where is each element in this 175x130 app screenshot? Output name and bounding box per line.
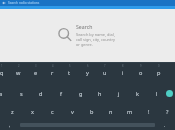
staticText: r <box>51 69 54 77</box>
button[interactable]: 2 <box>10 63 27 84</box>
staticText: q <box>0 69 4 77</box>
staticText: n <box>109 108 113 116</box>
staticText: o <box>139 69 143 77</box>
staticText: 9 <box>140 64 142 68</box>
other: Search <box>57 27 73 43</box>
button[interactable]: 8 <box>114 63 132 84</box>
button[interactable]: 4 <box>44 63 61 84</box>
button[interactable]: 6 <box>78 63 96 84</box>
staticText: 4 <box>52 64 54 68</box>
staticText: , <box>9 122 11 128</box>
staticText: call sign, city, country <box>76 37 115 42</box>
button[interactable]: j <box>109 84 128 103</box>
button[interactable]: d <box>31 84 51 103</box>
staticText: 7 <box>104 64 106 68</box>
staticText: 1 <box>1 64 3 68</box>
button[interactable]: k <box>128 84 147 103</box>
button[interactable]: Enter <box>166 90 173 97</box>
button[interactable]: Back <box>0 0 175 6</box>
button[interactable]: x <box>22 103 42 120</box>
button[interactable]: , <box>0 120 20 130</box>
staticText: 5 <box>69 64 71 68</box>
staticText: Search by name, dial, <box>76 32 115 37</box>
staticText: 3 <box>35 64 37 68</box>
staticText: c <box>51 108 54 116</box>
staticText: 0 <box>158 64 160 68</box>
staticText: h <box>98 90 102 98</box>
button[interactable]: Back <box>2 1 6 5</box>
staticText: k <box>136 90 139 98</box>
button[interactable]: 9 <box>132 63 150 84</box>
button[interactable]: a <box>0 84 11 103</box>
button[interactable]: 0 <box>150 63 168 84</box>
button[interactable]: h <box>90 84 109 103</box>
button[interactable]: l <box>147 84 166 103</box>
button[interactable]: f <box>51 84 71 103</box>
staticText: 2 <box>18 64 20 68</box>
button[interactable]: . <box>155 120 175 130</box>
staticText: f <box>60 90 62 98</box>
staticText: x <box>31 108 34 116</box>
button[interactable]: 5 <box>61 63 78 84</box>
staticText: j <box>118 90 120 98</box>
button[interactable]: 3 <box>27 63 44 84</box>
button[interactable]: n <box>101 103 120 120</box>
staticText: a <box>0 90 3 98</box>
button[interactable]: v <box>62 103 82 120</box>
button[interactable]: c <box>42 103 62 120</box>
button[interactable]: z <box>2 103 22 120</box>
staticText: v <box>71 108 74 116</box>
staticText: d <box>39 90 43 98</box>
button[interactable]: m <box>120 103 139 120</box>
button[interactable]: 7 <box>96 63 114 84</box>
staticText: u <box>103 69 107 77</box>
staticText: w <box>16 69 21 77</box>
staticText: Search radio stations <box>8 1 40 5</box>
staticText: Search <box>76 23 93 30</box>
button[interactable]: 1 <box>0 63 10 84</box>
staticText: ! <box>148 108 150 116</box>
button[interactable]: s <box>11 84 31 103</box>
staticText: p <box>157 69 161 77</box>
staticText: e <box>34 69 38 77</box>
staticText: 6 <box>87 64 89 68</box>
staticText: m <box>127 108 133 116</box>
staticText: l <box>156 90 158 98</box>
staticText: ? <box>166 108 169 116</box>
staticText: s <box>20 90 23 98</box>
staticText: b <box>90 108 94 116</box>
button[interactable]: g <box>71 84 90 103</box>
staticText: . <box>164 122 166 128</box>
staticText: y <box>86 69 89 77</box>
staticText: t <box>68 69 71 77</box>
staticText: or genre. <box>76 42 93 47</box>
button[interactable]: ! <box>139 103 158 120</box>
staticText: i <box>122 69 124 77</box>
staticText: g <box>79 90 83 98</box>
button[interactable]: b <box>82 103 101 120</box>
staticText: 8 <box>122 64 124 68</box>
button[interactable]: ? <box>158 103 175 120</box>
staticText: z <box>11 108 14 116</box>
